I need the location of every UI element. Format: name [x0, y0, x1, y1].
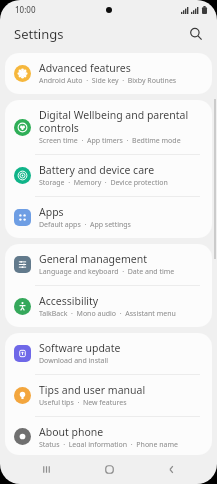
staticText: Settings	[14, 25, 64, 43]
button[interactable]: Home	[92, 455, 126, 484]
button[interactable]: Apps	[5, 197, 212, 238]
staticText: Default apps · App settings	[39, 220, 131, 230]
staticText: TalkBack · Mono audio · Assistant menu	[39, 309, 176, 319]
staticText: Storage · Memory · Device protection	[39, 178, 168, 188]
button[interactable]: Back	[154, 455, 188, 484]
staticText: Battery and device care	[39, 163, 155, 177]
staticText: Digital Wellbeing and parental controls	[39, 108, 200, 135]
staticText: Accessibility	[39, 294, 99, 308]
button[interactable]: Digital Wellbeing and parental controls	[5, 100, 212, 154]
staticText: Status · Legal information · Phone name	[39, 440, 178, 447]
button[interactable]: Search	[184, 22, 208, 46]
staticText: 10:00	[15, 4, 36, 15]
button[interactable]: Advanced features	[5, 53, 212, 94]
staticText: Tips and user manual	[39, 383, 146, 397]
button[interactable]: Accessibility	[5, 286, 212, 327]
button[interactable]: About phone	[5, 417, 212, 455]
button[interactable]: Tips and user manual	[5, 375, 212, 416]
button[interactable]: Recent apps	[29, 455, 63, 484]
button[interactable]: Software update	[5, 333, 212, 374]
button[interactable]: General management	[5, 244, 212, 285]
staticText: Android Auto · Side key · Bixby Routines	[39, 76, 177, 86]
staticText: Software update	[39, 341, 121, 355]
button[interactable]: Battery and device care	[5, 155, 212, 196]
staticText: Apps	[39, 205, 64, 219]
staticText: About phone	[39, 425, 104, 439]
staticText: Language and keyboard · Date and time	[39, 267, 175, 277]
staticText: Useful tips · New features	[39, 398, 127, 408]
staticText: Download and install	[39, 356, 109, 366]
staticText: General management	[39, 252, 147, 266]
staticText: Screen time · App timers · Bedtime mode	[39, 136, 181, 146]
staticText: Advanced features	[39, 61, 131, 75]
